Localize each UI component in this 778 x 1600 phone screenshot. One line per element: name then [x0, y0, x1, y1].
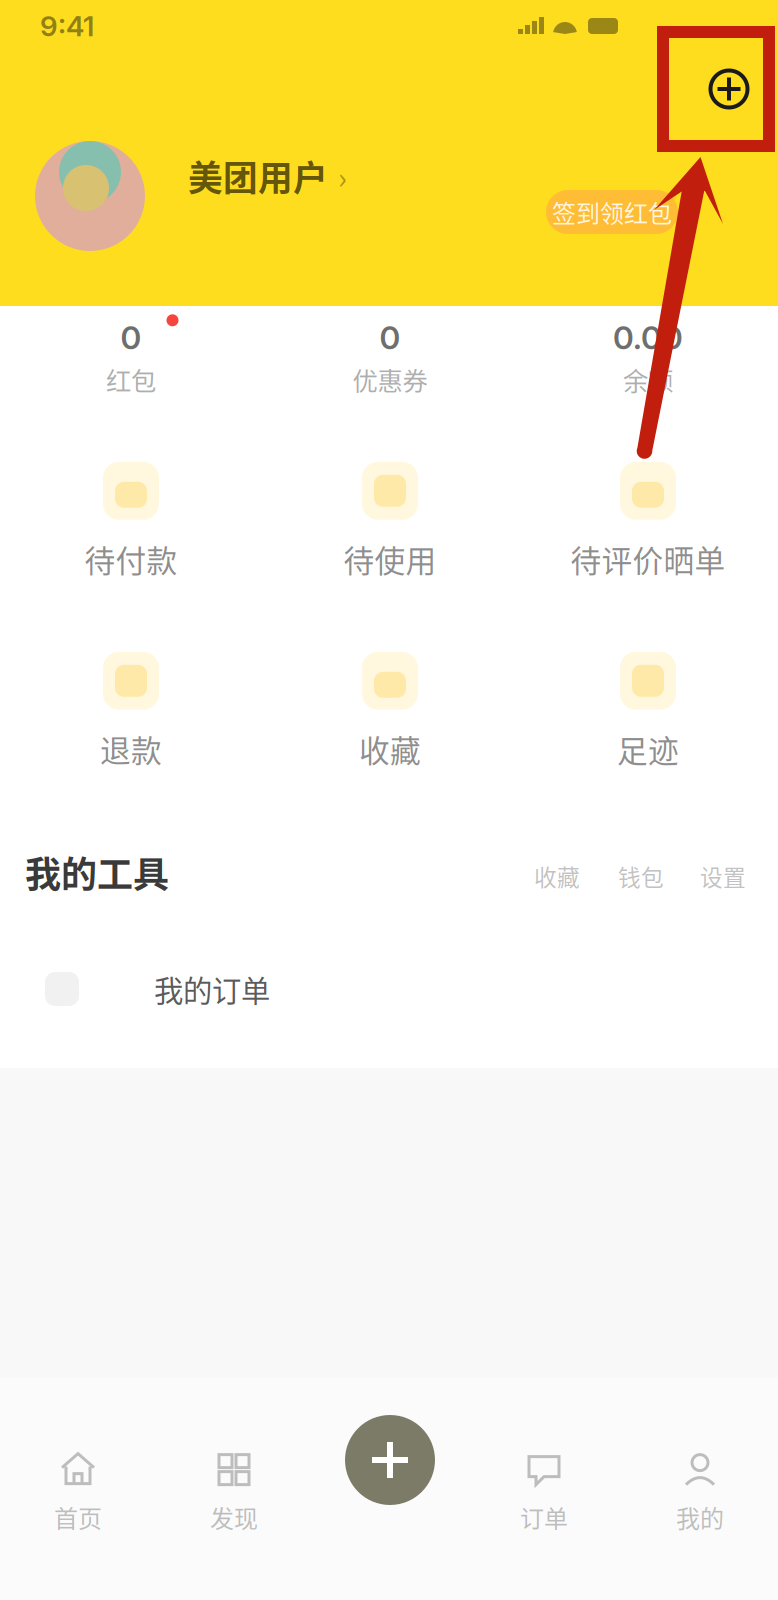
staticText: 美团用户	[188, 151, 328, 201]
button[interactable]: Add	[686, 46, 772, 132]
staticText: 0	[120, 318, 141, 357]
staticText: 我的工具	[25, 846, 169, 898]
staticText: 0	[379, 318, 400, 357]
staticText: 设置	[700, 860, 746, 892]
button[interactable]: 我的订单	[40, 949, 460, 1029]
staticText: 待评价晒单	[570, 537, 725, 581]
staticText: 红包	[106, 361, 156, 398]
staticText: 足迹	[617, 727, 679, 771]
staticText: 待付款	[84, 537, 177, 581]
button[interactable]: Create	[330, 1400, 450, 1520]
staticText: 发现	[210, 1500, 258, 1534]
staticText: ›	[338, 155, 347, 197]
button[interactable]: 钱包	[606, 859, 676, 893]
button[interactable]: 待评价晒单	[548, 453, 748, 587]
button[interactable]: 签到领红包	[546, 190, 678, 234]
staticText: 待使用	[343, 537, 436, 581]
staticText: 收藏	[359, 727, 421, 771]
staticText: 退款	[100, 727, 162, 771]
button[interactable]: 收藏	[290, 643, 490, 777]
button[interactable]: 退款	[31, 643, 231, 777]
button[interactable]: 美团用户	[188, 154, 418, 198]
staticText: 钱包	[618, 860, 664, 892]
button[interactable]: 足迹	[548, 643, 748, 777]
button[interactable]: Profile photo	[35, 141, 145, 251]
button[interactable]: 收藏	[522, 859, 592, 893]
staticText: 首页	[54, 1500, 102, 1534]
button[interactable]: 待使用	[290, 453, 490, 587]
staticText: 我的订单	[154, 968, 270, 1010]
button[interactable]: 发现	[159, 1422, 309, 1562]
button[interactable]: 设置	[688, 859, 758, 893]
button[interactable]: 待付款	[31, 453, 231, 587]
staticText: 我的	[676, 1500, 724, 1534]
staticText: 订单	[520, 1500, 568, 1534]
staticText: 收藏	[534, 860, 580, 892]
staticText: 9:41	[40, 9, 94, 43]
button[interactable]: 0.00	[543, 319, 753, 397]
button[interactable]: 我的	[625, 1422, 775, 1562]
staticText: 优惠券	[352, 361, 427, 398]
staticText: 余额	[623, 361, 673, 398]
staticText: 签到领红包	[552, 195, 672, 229]
button[interactable]: 订单	[469, 1422, 619, 1562]
staticText: 0.00	[613, 318, 683, 357]
button[interactable]: 0	[26, 319, 236, 397]
button[interactable]: 0	[285, 319, 495, 397]
button[interactable]: 首页	[3, 1422, 153, 1562]
